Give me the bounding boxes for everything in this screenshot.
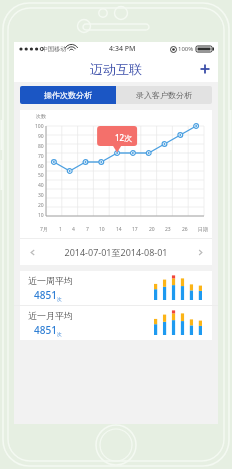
staticText: 26 — [182, 226, 188, 233]
staticText: 次数 — [36, 113, 46, 119]
staticText: 迈动互联 — [90, 61, 142, 77]
staticText: 80 — [38, 143, 44, 150]
staticText: 90 — [38, 133, 44, 140]
staticText: 4851 — [34, 288, 57, 302]
staticText: 100% — [178, 45, 194, 53]
staticText: 7月 — [40, 226, 48, 233]
staticText: 1 — [59, 226, 62, 233]
button[interactable]: 近一周平均 — [20, 271, 212, 305]
staticText: 4 — [72, 226, 75, 233]
staticText: 2014-07-01至2014-08-01 — [44, 246, 188, 258]
staticText: 23 — [165, 226, 171, 233]
button[interactable]: Previous — [20, 239, 44, 265]
staticText: 次 — [57, 331, 62, 337]
staticText: 10 — [38, 212, 44, 219]
button[interactable]: Add — [192, 56, 218, 82]
staticText: 近一周平均 — [28, 275, 73, 286]
button[interactable]: 操作次数分析 — [20, 86, 116, 104]
button[interactable]: Next — [188, 239, 212, 265]
staticText: 近一月平均 — [28, 310, 73, 321]
staticText: 4851 — [34, 323, 57, 337]
staticText: 7 — [86, 226, 89, 233]
staticText: 操作次数分析 — [44, 90, 92, 100]
staticText: 70 — [38, 153, 44, 160]
staticText: 30 — [38, 192, 44, 199]
button[interactable]: Previous — [20, 239, 212, 265]
staticText: 50 — [38, 172, 44, 179]
staticText: 14 — [116, 226, 122, 233]
staticText: 12次 — [115, 132, 133, 143]
staticText: 10 — [99, 226, 105, 233]
staticText: 录入客户数分析 — [136, 90, 192, 100]
staticText: 60 — [38, 163, 44, 170]
staticText: 20 — [149, 226, 155, 233]
staticText: 4:34 PM — [109, 44, 136, 54]
staticText: 日期 — [198, 226, 208, 232]
staticText: 中国移动 — [42, 45, 66, 53]
staticText: 17 — [132, 226, 138, 233]
staticText: 100 — [35, 123, 44, 130]
staticText: 40 — [38, 182, 44, 189]
button[interactable]: 录入客户数分析 — [116, 86, 212, 104]
button[interactable]: 近一月平均 — [20, 306, 212, 340]
staticText: 次 — [57, 296, 62, 302]
staticText: 20 — [38, 202, 44, 209]
